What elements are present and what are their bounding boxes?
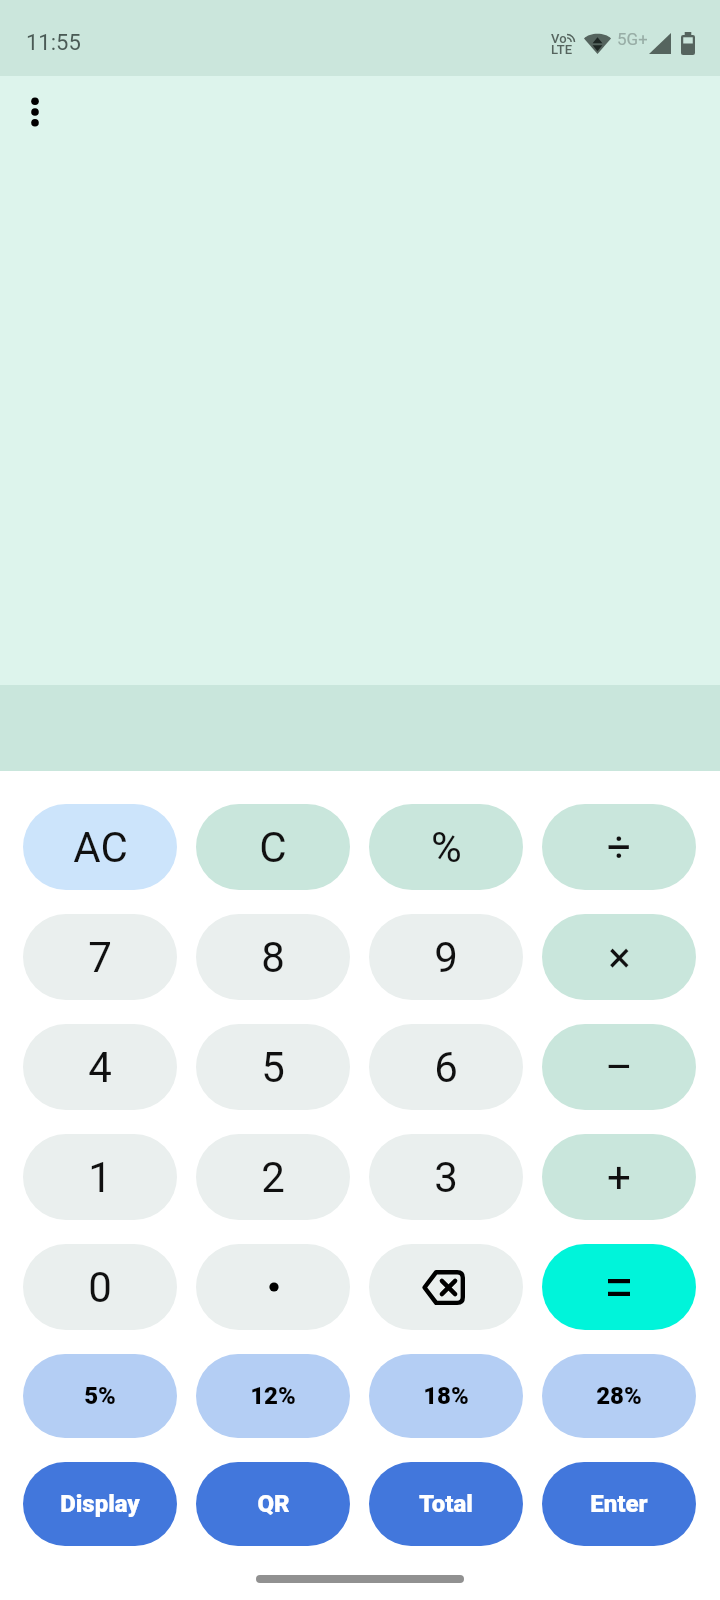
staticText: 11:55 bbox=[26, 30, 81, 56]
staticText: 3 bbox=[434, 1153, 458, 1202]
staticText: % bbox=[431, 823, 462, 872]
staticText: 2 bbox=[261, 1153, 285, 1202]
staticText: LTE bbox=[551, 42, 572, 57]
button[interactable]: 6 bbox=[369, 1024, 523, 1110]
button[interactable]: % bbox=[369, 804, 523, 890]
staticText: Vo bbox=[551, 31, 567, 46]
staticText: 7 bbox=[88, 933, 112, 982]
button[interactable]: 5 bbox=[196, 1024, 350, 1110]
button[interactable]: Equals bbox=[542, 1244, 696, 1330]
staticText: 18% bbox=[423, 1382, 469, 1410]
button[interactable]: 5% bbox=[23, 1354, 177, 1438]
button[interactable]: ÷ bbox=[542, 804, 696, 890]
staticText: AC bbox=[73, 823, 128, 872]
staticText: 9 bbox=[434, 933, 458, 982]
button[interactable]: 8 bbox=[196, 914, 350, 1000]
button[interactable]: More options bbox=[14, 91, 56, 133]
staticText: – bbox=[605, 1043, 633, 1092]
button[interactable]: Backspace bbox=[369, 1244, 523, 1330]
button[interactable]: 9 bbox=[369, 914, 523, 1000]
button[interactable]: Enter bbox=[542, 1462, 696, 1546]
button[interactable]: 28% bbox=[542, 1354, 696, 1438]
staticText: 5% bbox=[84, 1382, 116, 1410]
button[interactable]: 7 bbox=[23, 914, 177, 1000]
button[interactable]: + bbox=[542, 1134, 696, 1220]
staticText: 6 bbox=[434, 1043, 458, 1092]
button[interactable]: QR bbox=[196, 1462, 350, 1546]
button[interactable]: – bbox=[542, 1024, 696, 1110]
button[interactable]: 4 bbox=[23, 1024, 177, 1110]
button[interactable]: 12% bbox=[196, 1354, 350, 1438]
staticText: ÷ bbox=[607, 823, 631, 872]
button[interactable]: 18% bbox=[369, 1354, 523, 1438]
staticText: 12% bbox=[250, 1382, 296, 1410]
button[interactable]: Decimal point bbox=[196, 1244, 350, 1330]
button[interactable]: 3 bbox=[369, 1134, 523, 1220]
staticText: 28% bbox=[596, 1382, 642, 1410]
staticText: C bbox=[259, 823, 287, 872]
staticText: Enter bbox=[590, 1490, 648, 1518]
staticText: 5G+ bbox=[617, 29, 647, 49]
button[interactable]: Display bbox=[23, 1462, 177, 1546]
staticText: 5 bbox=[261, 1043, 285, 1092]
staticText: × bbox=[608, 933, 631, 982]
button[interactable]: 2 bbox=[196, 1134, 350, 1220]
staticText: + bbox=[607, 1153, 631, 1202]
staticText: 4 bbox=[88, 1043, 112, 1092]
staticText: 0 bbox=[88, 1263, 112, 1312]
button[interactable]: 0 bbox=[23, 1244, 177, 1330]
button[interactable]: Total bbox=[369, 1462, 523, 1546]
button[interactable]: × bbox=[542, 914, 696, 1000]
button[interactable]: AC bbox=[23, 804, 177, 890]
button[interactable]: 1 bbox=[23, 1134, 177, 1220]
staticText: Display bbox=[60, 1490, 140, 1518]
staticText: 8 bbox=[261, 933, 285, 982]
button[interactable]: C bbox=[196, 804, 350, 890]
staticText: Total bbox=[419, 1490, 473, 1518]
staticText: QR bbox=[257, 1490, 290, 1518]
staticText: 1 bbox=[88, 1153, 112, 1202]
